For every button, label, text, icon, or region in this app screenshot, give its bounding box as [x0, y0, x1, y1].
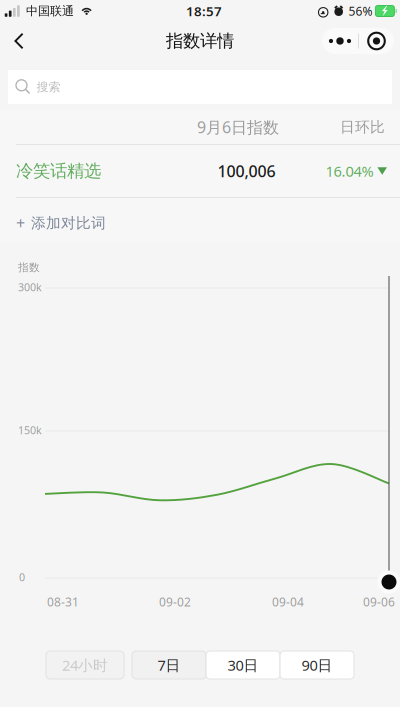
staticText: 09-02	[159, 594, 191, 610]
button[interactable]: 30日	[206, 651, 280, 679]
button[interactable]: Close mini program	[359, 28, 394, 54]
button[interactable]: 24小时	[46, 651, 124, 679]
staticText: 0	[19, 570, 25, 584]
button[interactable]: Back	[2, 23, 36, 59]
staticText: 18:57	[186, 2, 222, 20]
staticText: 300k	[18, 280, 42, 294]
staticText: 7日	[157, 655, 180, 675]
staticText: 150k	[18, 423, 42, 437]
staticText: 56%	[348, 3, 372, 19]
button[interactable]: 90日	[280, 651, 354, 679]
button[interactable]: 搜索	[8, 70, 392, 104]
staticText: 指数详情	[166, 30, 234, 52]
staticText: +	[16, 212, 25, 234]
staticText: 24小时	[62, 655, 108, 675]
staticText: 中国联通	[26, 4, 74, 18]
staticText: 添加对比词	[31, 214, 106, 232]
button[interactable]: +	[0, 198, 400, 242]
staticText: 日环比	[340, 118, 385, 136]
staticText: 09-04	[272, 594, 304, 610]
staticText: 冷笑话精选	[16, 160, 101, 182]
staticText: 09-06	[363, 594, 395, 610]
staticText: 08-31	[47, 594, 79, 610]
button[interactable]: 冷笑话精选	[0, 145, 400, 197]
staticText: 16.04%	[325, 161, 373, 181]
button[interactable]: More options	[322, 28, 358, 54]
staticText: 指数	[18, 261, 40, 274]
staticText: 90日	[301, 655, 332, 675]
staticText: 30日	[227, 655, 258, 675]
staticText: 100,006	[217, 160, 275, 182]
staticText: 搜索	[36, 80, 60, 94]
staticText: 9月6日指数	[197, 116, 279, 138]
button[interactable]: 7日	[132, 651, 206, 679]
